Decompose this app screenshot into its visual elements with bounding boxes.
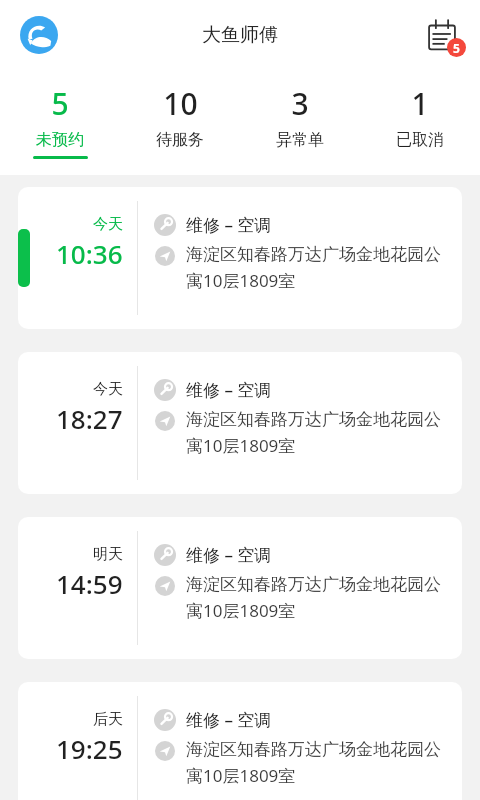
staticText: 10:36 bbox=[56, 236, 123, 271]
staticText: 大鱼师傅 bbox=[202, 23, 278, 47]
staticText: 维修 – 空调 bbox=[186, 543, 272, 566]
button[interactable]: 3 bbox=[240, 70, 360, 175]
staticText: 19:25 bbox=[56, 731, 123, 766]
staticText: 异常单 bbox=[276, 130, 324, 150]
staticText: 维修 – 空调 bbox=[186, 213, 272, 236]
button[interactable] bbox=[18, 187, 462, 329]
staticText: 海淀区知春路万达广场金地花园公寓10层1809室 bbox=[186, 574, 448, 622]
button[interactable]: 5 bbox=[0, 70, 120, 175]
staticText: 维修 – 空调 bbox=[186, 378, 272, 401]
staticText: 18:27 bbox=[56, 401, 123, 436]
staticText: 14:59 bbox=[56, 566, 123, 601]
staticText: 海淀区知春路万达广场金地花园公寓10层1809室 bbox=[186, 739, 448, 787]
staticText: 1 bbox=[411, 83, 429, 124]
staticText: 后天 bbox=[93, 710, 123, 729]
staticText: 海淀区知春路万达广场金地花园公寓10层1809室 bbox=[186, 409, 448, 457]
button[interactable]: 1 bbox=[360, 70, 480, 175]
staticText: 海淀区知春路万达广场金地花园公寓10层1809室 bbox=[186, 244, 448, 292]
staticText: 5 bbox=[51, 83, 69, 124]
staticText: 维修 – 空调 bbox=[186, 708, 272, 731]
staticText: 未预约 bbox=[36, 130, 84, 150]
staticText: 明天 bbox=[93, 545, 123, 564]
button[interactable] bbox=[18, 517, 462, 659]
staticText: 10 bbox=[163, 83, 198, 124]
staticText: 今天 bbox=[93, 380, 123, 399]
staticText: 今天 bbox=[93, 215, 123, 234]
button[interactable]: Schedule bbox=[420, 13, 464, 57]
staticText: 3 bbox=[291, 83, 309, 124]
staticText: 待服务 bbox=[156, 130, 204, 150]
button[interactable] bbox=[18, 682, 462, 800]
staticText: 5 bbox=[453, 40, 460, 56]
staticText: 已取消 bbox=[396, 130, 444, 150]
button[interactable]: 10 bbox=[120, 70, 240, 175]
button[interactable]: App logo bbox=[18, 14, 60, 56]
button[interactable] bbox=[18, 352, 462, 494]
